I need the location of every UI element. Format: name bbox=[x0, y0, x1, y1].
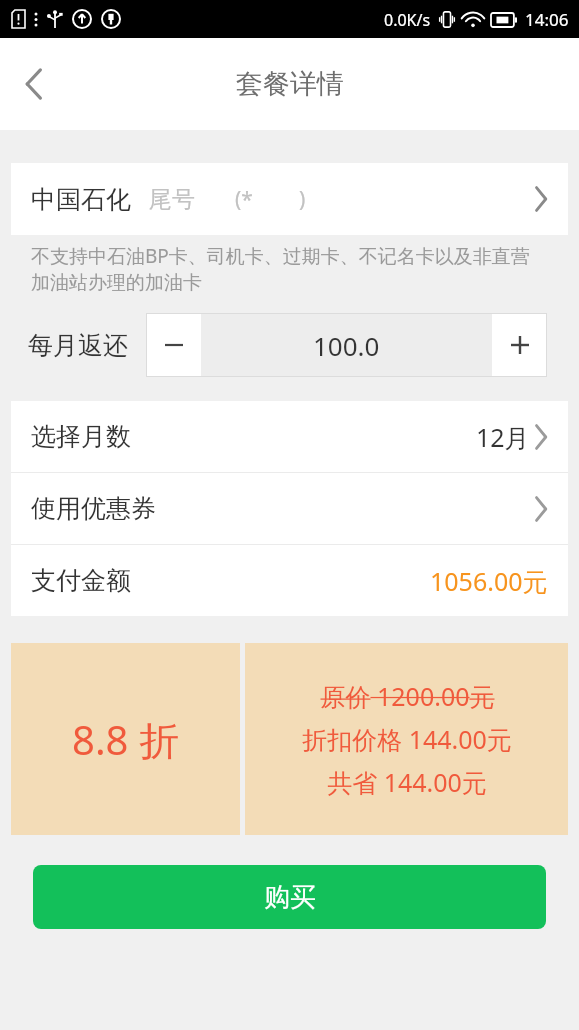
staticText: 8.8 折 bbox=[72, 712, 179, 767]
staticText: 共省 144.00元 bbox=[327, 765, 487, 799]
button[interactable]: 8.8 折 bbox=[11, 643, 240, 835]
button[interactable]: 使用优惠券 bbox=[11, 473, 568, 544]
staticText: 100.0 bbox=[313, 328, 380, 363]
button[interactable]: 购买 bbox=[33, 865, 546, 929]
staticText: 原价 1200.00元 bbox=[320, 679, 495, 713]
staticText: 12月 bbox=[476, 420, 530, 454]
staticText: ) bbox=[299, 185, 306, 214]
button[interactable]: Decrease bbox=[146, 313, 201, 377]
staticText: 折扣价格 144.00元 bbox=[302, 722, 512, 756]
button[interactable]: 支付金额 bbox=[11, 545, 568, 616]
staticText: 支付金额 bbox=[31, 565, 131, 596]
staticText: 每月返还 bbox=[28, 330, 128, 361]
staticText: 中国石化 bbox=[31, 184, 131, 215]
staticText: 使用优惠券 bbox=[31, 493, 156, 524]
staticText: 购买 bbox=[264, 881, 316, 914]
button[interactable]: 100.0 bbox=[201, 313, 492, 377]
button[interactable]: 中国石化 bbox=[11, 163, 568, 235]
button[interactable]: Increase bbox=[492, 313, 547, 377]
staticText: 1056.00元 bbox=[430, 564, 548, 598]
staticText: (* bbox=[235, 185, 253, 214]
staticText: 0.0K/s bbox=[384, 9, 431, 31]
staticText: 不支持中石油BP卡、司机卡、过期卡、不记名卡以及非直营加油站办理的加油卡 bbox=[31, 243, 548, 295]
staticText: 套餐详情 bbox=[236, 67, 344, 101]
staticText: 尾号 bbox=[149, 185, 195, 214]
staticText: 14:06 bbox=[525, 8, 569, 31]
staticText: 选择月数 bbox=[31, 421, 131, 452]
button[interactable]: 选择月数 bbox=[11, 401, 568, 472]
button[interactable]: 原价 1200.00元 bbox=[245, 643, 568, 835]
button[interactable]: Back bbox=[0, 50, 68, 118]
